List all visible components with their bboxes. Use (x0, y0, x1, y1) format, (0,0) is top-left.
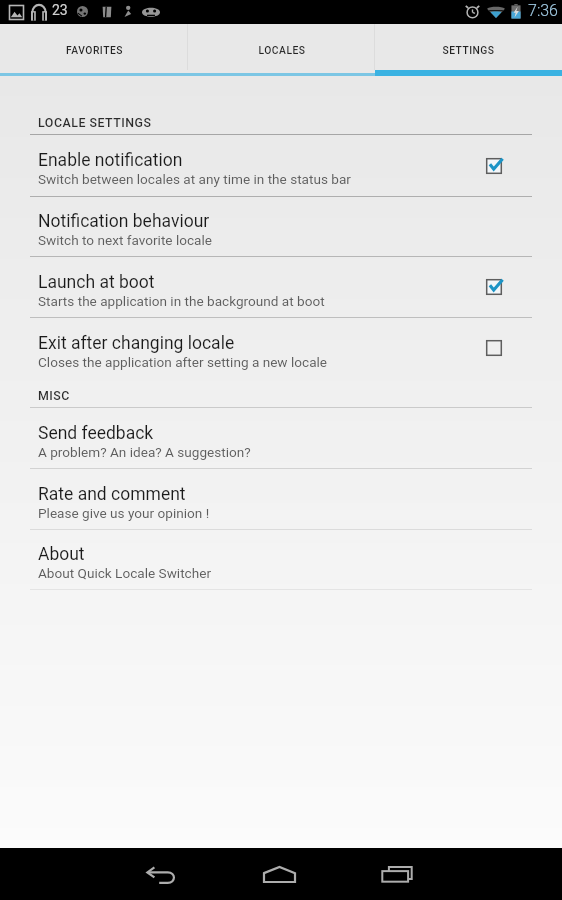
button[interactable]: About (0, 530, 562, 590)
button[interactable]: Back (122, 850, 200, 900)
button[interactable]: Enable notification (0, 135, 562, 197)
staticText: Rate and comment (38, 484, 186, 505)
staticText: Please give us your opinion ! (38, 505, 210, 521)
button[interactable]: FAVORITES (0, 24, 188, 76)
staticText: FAVORITES (66, 44, 123, 56)
staticText: Launch at boot (38, 272, 155, 293)
staticText: A problem? An idea? A suggestion? (38, 444, 251, 460)
staticText: About Quick Locale Switcher (38, 565, 212, 581)
button[interactable]: Rate and comment (0, 469, 562, 530)
button[interactable]: Recents (358, 848, 436, 900)
staticText: Switch to next favorite locale (38, 232, 213, 248)
button[interactable]: Notification behaviour (0, 197, 562, 257)
button[interactable]: LOCALES (188, 24, 375, 76)
staticText: MISC (38, 388, 70, 403)
button[interactable]: Launch at boot (0, 257, 562, 318)
staticText: Exit after changing locale (38, 333, 235, 354)
staticText: SETTINGS (442, 44, 495, 56)
button[interactable]: Exit after changing locale (0, 318, 562, 378)
staticText: LOCALE SETTINGS (38, 115, 152, 130)
staticText: About (38, 544, 85, 565)
button[interactable]: Home (240, 848, 318, 900)
staticText: Switch between locales at any time in th… (38, 171, 351, 187)
staticText: LOCALES (258, 44, 306, 56)
staticText: Send feedback (38, 423, 154, 444)
staticText: Enable notification (38, 150, 183, 171)
button[interactable]: Send feedback (0, 408, 562, 469)
staticText: Notification behaviour (38, 211, 210, 232)
staticText: 23 (52, 2, 68, 18)
staticText: Starts the application in the background… (38, 293, 325, 309)
staticText: Closes the application after setting a n… (38, 354, 328, 370)
staticText: 7:36 (528, 1, 558, 20)
button[interactable]: SETTINGS (375, 24, 562, 76)
